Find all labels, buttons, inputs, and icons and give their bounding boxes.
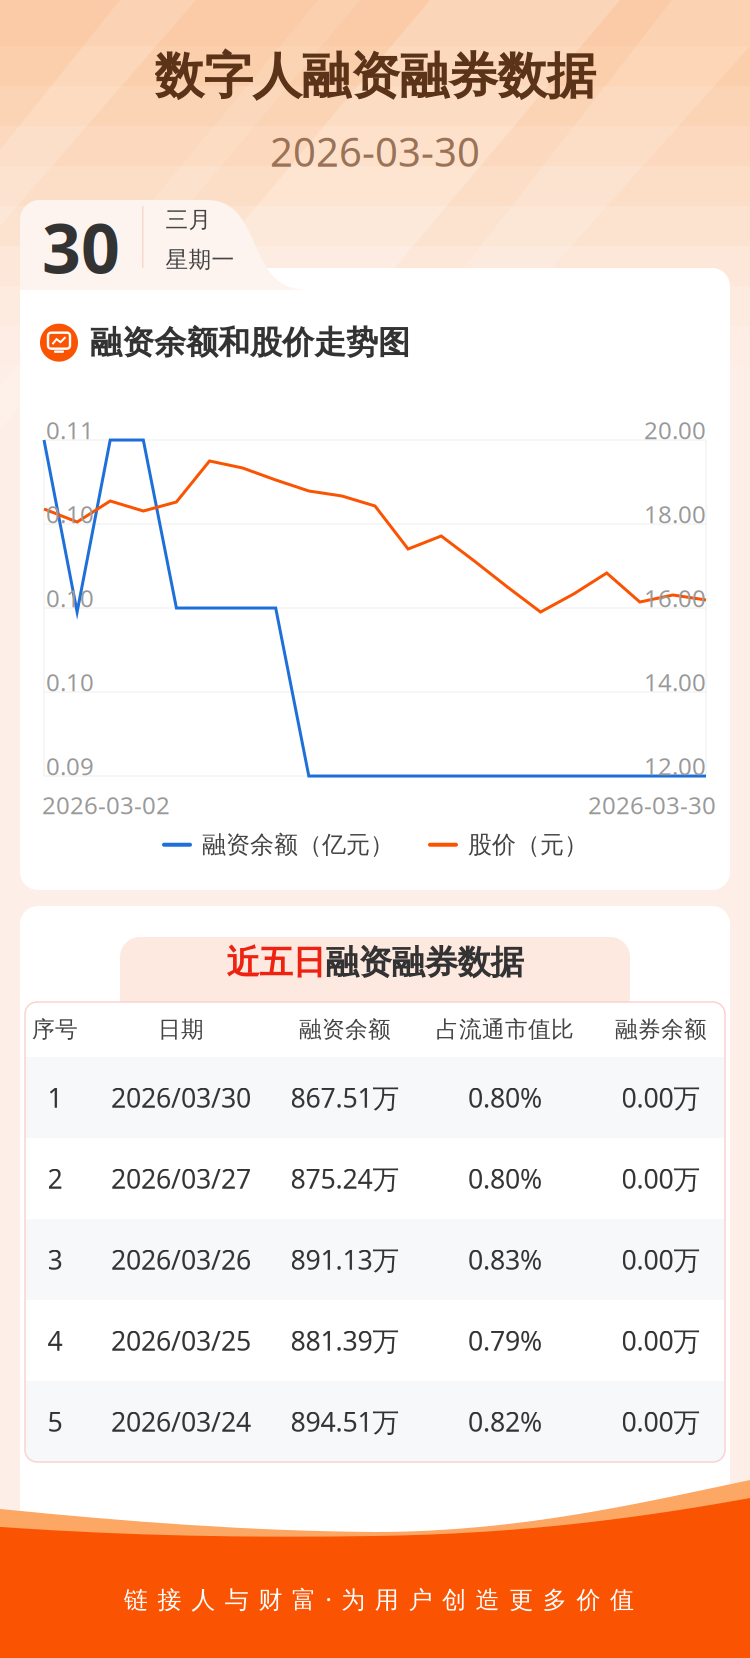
staticText: 2 [47,1161,62,1196]
staticText: 2026/03/27 [111,1161,251,1196]
staticText: 881.39万 [290,1323,399,1358]
staticText: 0.80% [468,1161,542,1196]
staticText: 融资余额和股价走势图 [90,323,410,362]
staticText: 融资融券数据 [325,942,523,983]
staticText: 894.51万 [290,1404,399,1439]
staticText: 2026/03/26 [111,1242,251,1277]
staticText: 0.10 [46,498,94,530]
staticText: 三月 [165,206,211,234]
staticText: 数字人融资融券数据 [154,46,595,107]
staticText: 891.13万 [290,1242,399,1277]
staticText: 0.00万 [621,1404,700,1439]
staticText: 867.51万 [290,1080,399,1115]
staticText: 2026-03-30 [588,789,716,821]
staticText: 30 [42,202,120,292]
staticText: 12.00 [644,750,706,782]
staticText: 0.10 [46,582,94,614]
staticText: 0.83% [468,1242,542,1277]
staticText: 近五日 [226,942,325,983]
staticText: 875.24万 [290,1161,399,1196]
staticText: 5 [47,1404,62,1439]
staticText: 融券余额 [615,1016,707,1043]
staticText: 0.10 [46,666,94,698]
staticText: 0.82% [468,1404,542,1439]
staticText: 2026-03-30 [270,125,480,178]
staticText: 16.00 [644,582,706,614]
staticText: 14.00 [644,666,706,698]
staticText: 融资余额 [299,1016,391,1043]
staticText: 0.00万 [621,1323,700,1358]
staticText: 0.00万 [621,1161,700,1196]
staticText: 2026-03-02 [42,789,170,821]
staticText: 0.00万 [621,1242,700,1277]
staticText: 4 [47,1323,62,1358]
staticText: 18.00 [644,498,706,530]
staticText: 星期一 [165,246,234,273]
staticText: 0.09 [46,750,94,782]
staticText: 链接人与财富·为用户创造更多价值 [124,1583,634,1615]
staticText: 2026/03/25 [111,1323,251,1358]
staticText: 0.79% [468,1323,542,1358]
staticText: 序号 [32,1016,78,1043]
staticText: 0.00万 [621,1080,700,1115]
staticText: 20.00 [644,414,706,446]
staticText: 2026/03/30 [111,1080,251,1115]
staticText: 1 [47,1080,62,1115]
staticText: 占流通市值比 [436,1016,574,1043]
staticText: 0.11 [46,414,94,446]
staticText: 日期 [158,1016,204,1043]
staticText: 3 [47,1242,62,1277]
staticText: 0.80% [468,1080,542,1115]
staticText: 股价（元） [468,830,588,859]
staticText: 2026/03/24 [111,1404,251,1439]
staticText: 融资余额（亿元） [202,830,394,859]
